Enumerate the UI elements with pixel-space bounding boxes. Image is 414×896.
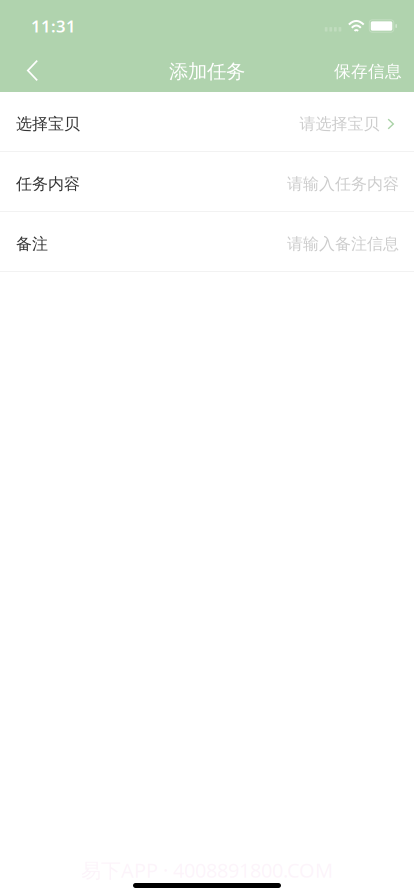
- button[interactable]: Back: [11, 47, 54, 91]
- button[interactable]: 选择宝贝: [0, 92, 414, 152]
- staticText: 11:31: [31, 15, 76, 37]
- staticText: 保存信息: [334, 61, 402, 82]
- button[interactable]: 任务内容: [0, 152, 414, 212]
- staticText: 请输入备注信息: [287, 234, 399, 254]
- staticText: 备注: [16, 234, 48, 254]
- button[interactable]: 备注: [0, 212, 414, 272]
- staticText: 易下APP · 4008891800.COM: [81, 857, 333, 883]
- staticText: 添加任务: [169, 59, 245, 84]
- button[interactable]: 保存信息: [320, 47, 414, 91]
- staticText: 选择宝贝: [16, 114, 80, 134]
- staticText: 请选择宝贝: [299, 114, 379, 134]
- staticText: 请输入任务内容: [287, 174, 399, 194]
- staticText: 任务内容: [16, 174, 80, 194]
